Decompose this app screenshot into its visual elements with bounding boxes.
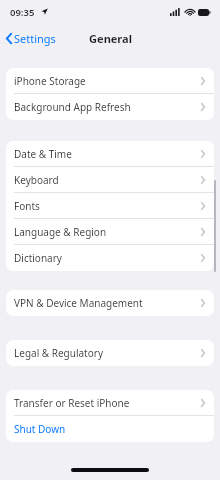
button[interactable]: Dictionary [6, 245, 214, 271]
button[interactable]: Shut Down [6, 416, 214, 442]
staticText: VPN & Device Management [14, 296, 143, 310]
staticText: 09:35 [10, 6, 35, 19]
staticText: Dictionary [14, 251, 62, 265]
button[interactable]: Keyboard [6, 167, 214, 193]
staticText: Background App Refresh [14, 100, 131, 114]
button[interactable]: iPhone Storage [6, 68, 214, 94]
staticText: Transfer or Reset iPhone [14, 396, 130, 410]
button[interactable]: Legal & Regulatory [6, 340, 214, 366]
staticText: Legal & Regulatory [14, 346, 104, 360]
staticText: Fonts [14, 199, 40, 213]
staticText: Keyboard [14, 173, 59, 187]
staticText: iPhone Storage [14, 74, 86, 88]
staticText: Language & Region [14, 225, 107, 239]
button[interactable]: VPN & Device Management [6, 290, 214, 316]
staticText: Settings [14, 31, 56, 46]
staticText: Date & Time [14, 147, 72, 161]
staticText: General [89, 31, 132, 46]
staticText: Shut Down [14, 422, 66, 436]
button[interactable]: Transfer or Reset iPhone [6, 390, 214, 416]
button[interactable]: Date & Time [6, 141, 214, 167]
button[interactable]: Fonts [6, 193, 214, 219]
button[interactable]: Background App Refresh [6, 94, 214, 120]
button[interactable]: Back to Settings [3, 29, 59, 48]
button[interactable]: Language & Region [6, 219, 214, 245]
